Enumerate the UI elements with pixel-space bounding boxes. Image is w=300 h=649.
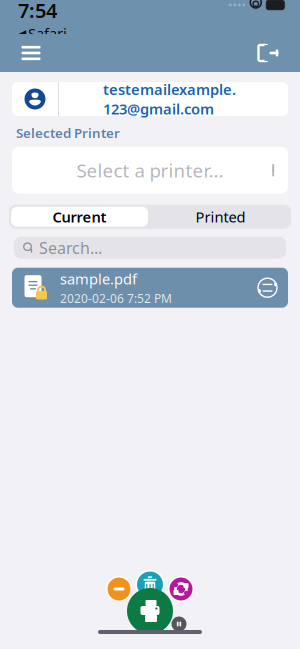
staticText: 7:54 [18, 0, 57, 24]
staticText: Search... [39, 237, 102, 258]
button[interactable]: Printed [150, 205, 291, 229]
button[interactable]: Delete [134, 568, 166, 609]
button[interactable]: Search [14, 237, 286, 259]
staticText: Select a printer... [76, 158, 223, 183]
button[interactable]: Current [9, 205, 150, 229]
staticText: Current [52, 207, 106, 226]
staticText: ◀ [18, 27, 26, 39]
button[interactable]: Refresh [166, 574, 196, 604]
button[interactable]: Menu [8, 34, 54, 72]
staticText: Printed [195, 207, 245, 226]
button[interactable]: Sign out [246, 34, 292, 72]
button[interactable]: sample.pdf, 2020-02-06 7:52 PM [12, 268, 288, 308]
button[interactable]: Collapse [170, 615, 188, 633]
staticText: Selected Printer [16, 124, 120, 142]
button[interactable]: Account email [12, 82, 288, 116]
staticText: Safari [28, 23, 67, 43]
button[interactable]: Remove [104, 574, 134, 604]
staticText: sample.pdf [60, 269, 137, 288]
staticText: testemailexample.123@gmail.com [103, 79, 236, 118]
staticText: 2020-02-06 7:52 PM [60, 290, 172, 306]
button[interactable]: Select a printer [12, 147, 288, 194]
button[interactable]: Print [126, 587, 174, 635]
